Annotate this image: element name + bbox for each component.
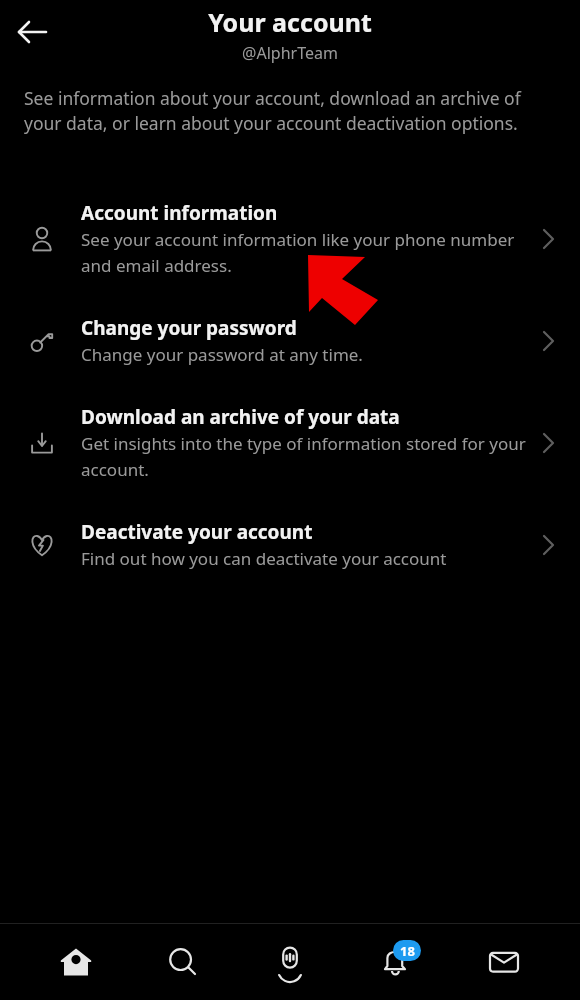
button[interactable]: Spaces — [259, 931, 321, 993]
button[interactable]: Account information — [0, 198, 580, 279]
staticText: Your account — [208, 5, 372, 39]
button[interactable]: Home — [45, 931, 107, 993]
staticText: Account information — [81, 200, 278, 226]
staticText: Get insights into the type of informatio… — [81, 432, 530, 481]
staticText: @AlphrTeam — [242, 42, 338, 64]
staticText: 18 — [400, 942, 415, 960]
staticText: Find out how you can deactivate your acc… — [81, 547, 447, 570]
button[interactable]: Change your password — [0, 313, 580, 368]
staticText: See information about your account, down… — [24, 86, 558, 136]
button[interactable]: Messages — [473, 931, 535, 993]
staticText: Deactivate your account — [81, 519, 313, 545]
button[interactable]: Download an archive of your data — [0, 402, 580, 483]
staticText: Change your password at any time. — [81, 343, 363, 366]
staticText: Change your password — [81, 315, 297, 341]
button[interactable]: Notifications, 18 new — [366, 931, 428, 993]
staticText: Download an archive of your data — [81, 404, 400, 430]
button[interactable]: Search — [152, 931, 214, 993]
staticText: See your account information like your p… — [81, 228, 530, 277]
button[interactable]: Deactivate your account — [0, 517, 580, 572]
button[interactable]: Back — [6, 6, 58, 58]
